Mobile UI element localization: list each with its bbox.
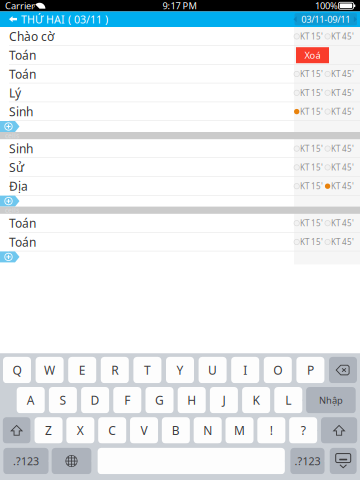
button[interactable]: Toán xyxy=(0,65,360,83)
button[interactable]: S xyxy=(49,387,77,413)
staticText: .?123 xyxy=(13,454,39,468)
staticText: KT 15' xyxy=(300,181,323,191)
button[interactable]: Toán xyxy=(0,233,360,251)
staticText: Lý xyxy=(9,85,21,101)
staticText: KT 15' xyxy=(300,69,323,79)
staticText: Nhập xyxy=(319,394,343,406)
staticText: I xyxy=(243,362,247,378)
button[interactable]: T xyxy=(133,357,161,383)
staticText: U xyxy=(208,362,217,378)
staticText: R xyxy=(111,362,118,378)
button[interactable]: Add period xyxy=(0,121,360,132)
button[interactable]: Hide keyboard xyxy=(330,448,357,474)
staticText: KT 15' xyxy=(300,143,323,154)
button[interactable]: Sinh xyxy=(0,102,360,121)
button[interactable]: Z xyxy=(34,417,62,443)
button[interactable]: J xyxy=(210,387,238,413)
button[interactable]: U xyxy=(199,357,227,383)
staticText: X xyxy=(77,422,84,438)
button[interactable]: B xyxy=(162,417,190,443)
staticText: V xyxy=(140,422,147,438)
button[interactable]: V xyxy=(130,417,158,443)
button[interactable]: Nhập xyxy=(306,387,356,413)
staticText: T xyxy=(144,362,151,378)
button[interactable]: ! xyxy=(257,417,285,443)
staticText: THỨ HAI ( 03/11 ) xyxy=(21,12,108,26)
button[interactable]: Chào cờ xyxy=(0,27,360,46)
button[interactable]: Add period xyxy=(0,196,360,207)
button[interactable]: X xyxy=(66,417,94,443)
button[interactable]: D xyxy=(81,387,109,413)
button[interactable]: P xyxy=(296,357,324,383)
staticText: F xyxy=(124,392,130,408)
staticText: Sử xyxy=(9,159,24,175)
button[interactable]: 03/11-09/11 xyxy=(301,13,350,25)
button[interactable]: Toán xyxy=(0,214,360,233)
staticText: 9:17 PM xyxy=(162,0,196,12)
staticText: ? xyxy=(301,422,306,438)
button[interactable]: O xyxy=(264,357,292,383)
button[interactable]: W xyxy=(36,357,64,383)
staticText: Toán xyxy=(9,47,36,63)
staticText: KT 45' xyxy=(331,143,354,154)
button[interactable]: Xoá xyxy=(296,47,329,63)
staticText: Y xyxy=(176,362,183,378)
staticText: S xyxy=(59,392,66,408)
staticText: KT 15' xyxy=(300,106,323,117)
staticText: KT 45' xyxy=(331,87,354,98)
staticText: N xyxy=(203,422,212,438)
staticText: KT 45' xyxy=(331,106,354,117)
staticText: Sinh xyxy=(9,141,33,156)
staticText: A xyxy=(27,392,35,408)
button[interactable]: Shift xyxy=(3,417,30,443)
button[interactable]: M xyxy=(225,417,253,443)
button[interactable]: THỨ HAI ( 03/11 ) xyxy=(0,11,108,27)
button[interactable]: Next keyboard xyxy=(52,448,91,474)
staticText: cells xyxy=(5,206,19,215)
button[interactable]: A xyxy=(17,387,45,413)
button[interactable]: Y xyxy=(166,357,194,383)
staticText: KT 45' xyxy=(331,69,354,79)
button[interactable]: .?123 xyxy=(290,448,325,474)
button[interactable]: Địa xyxy=(0,177,360,196)
button[interactable]: Q xyxy=(3,357,31,383)
button[interactable]: Next week xyxy=(350,13,360,25)
button[interactable]: Toán xyxy=(0,46,360,65)
button[interactable]: Sử xyxy=(0,158,360,177)
staticText: KT 45' xyxy=(331,237,354,247)
staticText: KT 45' xyxy=(331,31,354,42)
staticText: Q xyxy=(12,362,21,378)
button[interactable]: R xyxy=(101,357,129,383)
button[interactable]: L xyxy=(274,387,302,413)
button[interactable]: Previous week xyxy=(290,13,301,25)
button[interactable]: N xyxy=(194,417,222,443)
staticText: 03/11-09/11 xyxy=(301,13,350,25)
staticText: 100% xyxy=(315,0,338,12)
button[interactable]: Shift xyxy=(321,417,357,443)
staticText: L xyxy=(285,392,291,408)
staticText: Z xyxy=(45,422,52,438)
button[interactable]: K xyxy=(242,387,270,413)
staticText: G xyxy=(155,392,164,408)
button[interactable]: Delete xyxy=(329,357,357,383)
button[interactable]: ? xyxy=(289,417,317,443)
staticText: B xyxy=(172,422,180,438)
button[interactable]: I xyxy=(231,357,259,383)
button[interactable]: E xyxy=(68,357,96,383)
button[interactable]: Lý xyxy=(0,83,360,102)
staticText: C xyxy=(108,422,116,438)
staticText: KT 15' xyxy=(300,237,323,247)
staticText: D xyxy=(91,392,100,408)
staticText: Toán xyxy=(9,215,36,231)
button[interactable]: .?123 xyxy=(3,448,49,474)
button[interactable]: G xyxy=(145,387,173,413)
button[interactable]: C xyxy=(98,417,126,443)
staticText: E xyxy=(79,362,86,378)
button[interactable]: Sinh xyxy=(0,139,360,158)
staticText: H xyxy=(187,392,196,408)
staticText: KT 15' xyxy=(300,87,323,98)
button[interactable]: F xyxy=(113,387,141,413)
button[interactable]: H xyxy=(178,387,206,413)
button[interactable]: Add period xyxy=(0,251,360,262)
